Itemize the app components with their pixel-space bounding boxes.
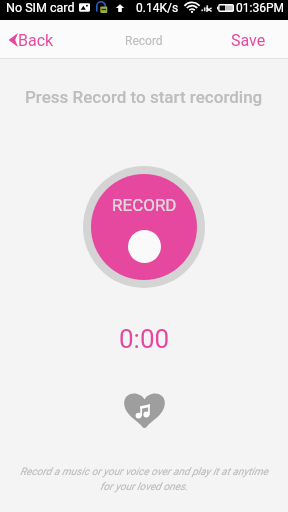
staticText: 01:36PM (236, 1, 284, 15)
staticText: RECORD (112, 195, 177, 215)
button[interactable]: Save (207, 20, 288, 58)
staticText: Record a music or your voice over and pl… (0, 465, 288, 492)
staticText: Press Record to start recording (25, 87, 263, 107)
staticText: Record (125, 34, 163, 48)
staticText: Back (18, 31, 54, 50)
staticText: 0:00 (119, 324, 170, 354)
staticText: 0.14K/s (136, 1, 179, 15)
staticText: No SIM card (6, 0, 75, 15)
button[interactable]: Record (83, 166, 205, 288)
button[interactable]: Back (0, 20, 64, 58)
